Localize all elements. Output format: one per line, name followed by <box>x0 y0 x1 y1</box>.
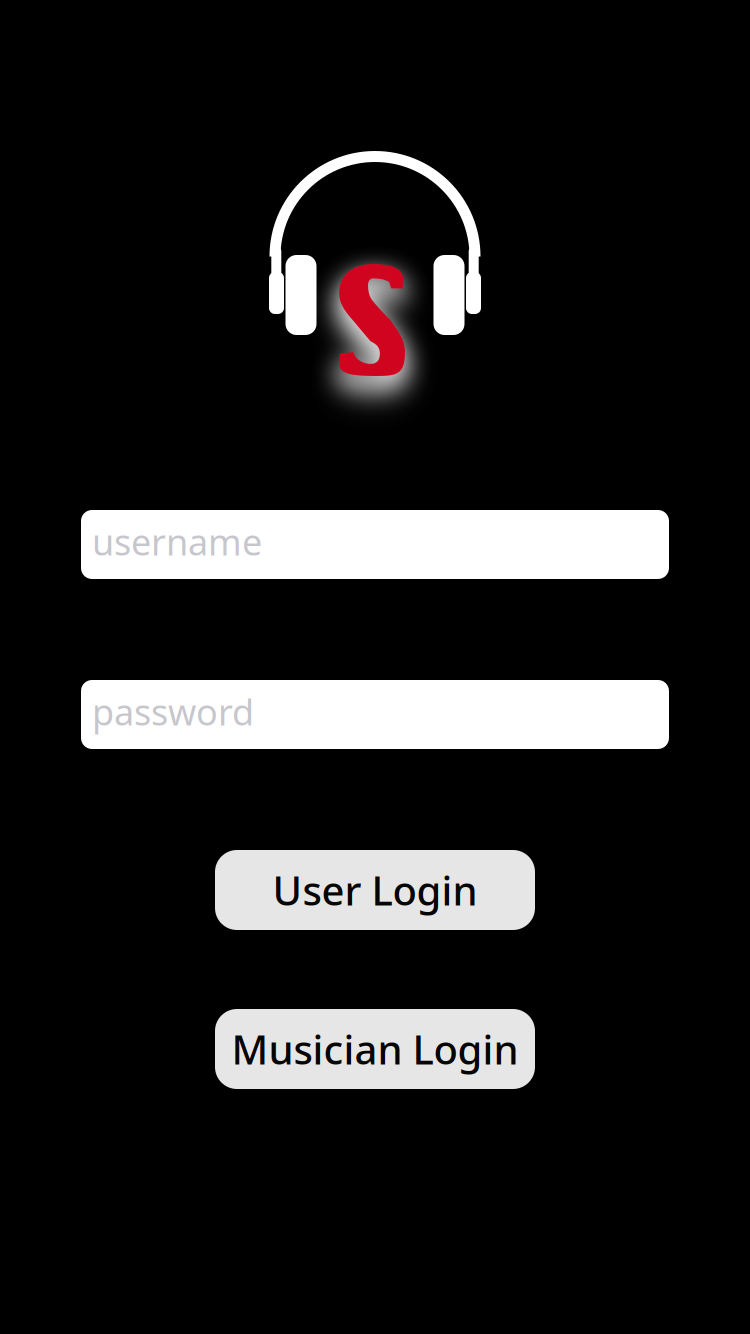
staticText: Musician Login <box>231 1022 518 1075</box>
staticText: username <box>92 518 262 565</box>
button[interactable]: User Login <box>215 850 535 930</box>
staticText: password <box>92 688 254 735</box>
staticText: User Login <box>272 863 477 916</box>
button[interactable]: Musician Login <box>215 1009 535 1089</box>
